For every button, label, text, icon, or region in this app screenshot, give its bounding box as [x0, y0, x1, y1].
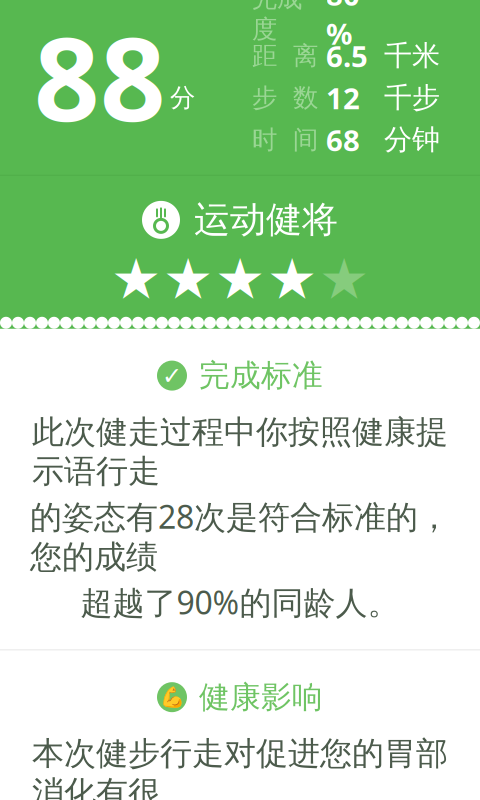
staticText: 距 离: [252, 40, 318, 71]
staticText: ★: [163, 247, 213, 311]
staticText: 68: [326, 120, 360, 159]
staticText: 6.5: [326, 36, 368, 75]
staticText: 时 间: [252, 124, 318, 155]
staticText: 完成度: [252, 0, 302, 45]
staticText: ★: [215, 247, 265, 311]
staticText: 运动健将: [194, 198, 338, 242]
staticText: 完成标准: [199, 357, 323, 394]
staticText: ★: [111, 247, 161, 311]
staticText: 12: [326, 78, 360, 117]
staticText: ★: [319, 247, 369, 311]
staticText: 88: [34, 1, 166, 153]
staticText: 80%: [326, 0, 360, 53]
staticText: 的姿态有28次是符合标准的，您的成绩: [30, 495, 450, 577]
staticText: 健康影响: [199, 678, 323, 716]
staticText: ✓: [162, 362, 182, 389]
staticText: 步 数: [252, 82, 318, 113]
staticText: 💪: [159, 686, 184, 709]
staticText: 分钟: [384, 123, 440, 157]
staticText: 千步: [384, 81, 440, 115]
staticText: 此次健走过程中你按照健康提示语行走: [32, 412, 448, 491]
staticText: 超越了90%的同龄人。: [80, 581, 399, 623]
staticText: 千米: [384, 39, 440, 73]
staticText: 分: [170, 82, 195, 113]
staticText: 本次健步行走对促进您的胃部消化有很: [32, 734, 448, 800]
staticText: ★: [267, 247, 317, 311]
